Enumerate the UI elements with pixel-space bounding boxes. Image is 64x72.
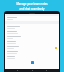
button[interactable]	[5, 35, 59, 40]
button[interactable]	[5, 50, 59, 55]
button[interactable]: Home	[16, 69, 19, 72]
staticText: and chat seamlessly	[3, 7, 61, 11]
button[interactable]: Compose new note	[31, 61, 34, 64]
button[interactable]: Chats	[31, 69, 34, 72]
button[interactable]	[5, 25, 59, 30]
button[interactable]	[5, 40, 59, 45]
button[interactable]: Profile	[45, 69, 48, 72]
button[interactable]	[5, 30, 59, 35]
button[interactable]	[5, 45, 59, 50]
button[interactable]	[5, 55, 59, 60]
staticText: Manage your team notes	[3, 2, 61, 6]
